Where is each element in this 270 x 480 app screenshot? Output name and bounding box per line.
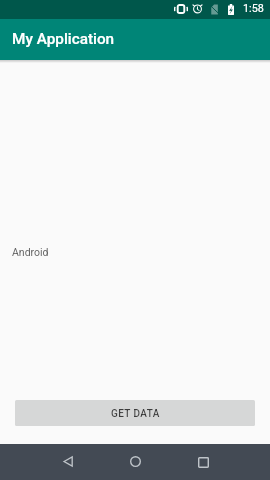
button[interactable]: Back [50, 444, 86, 480]
button[interactable]: Home [117, 444, 153, 480]
staticText: GET DATA [111, 408, 160, 420]
button[interactable]: GET DATA [15, 400, 255, 426]
staticText: Android [12, 246, 49, 258]
staticText: 1:58 [243, 2, 264, 15]
staticText: My Application [12, 30, 115, 48]
button[interactable]: Recent apps [185, 444, 221, 480]
